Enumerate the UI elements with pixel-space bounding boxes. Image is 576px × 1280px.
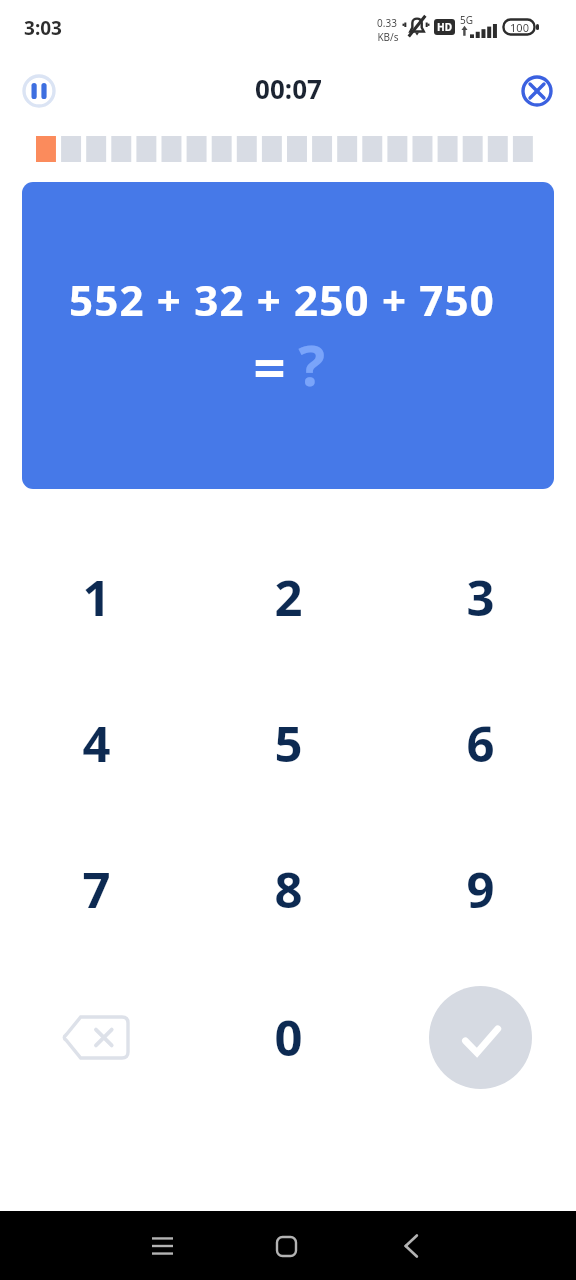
staticText: 2 <box>274 564 303 631</box>
staticText: 9 <box>466 856 495 923</box>
staticText: 100 <box>510 20 529 35</box>
button[interactable]: 3 <box>384 524 576 670</box>
button[interactable]: 1 <box>0 524 192 670</box>
button[interactable]: 0 <box>192 964 384 1110</box>
button[interactable]: 8 <box>192 816 384 962</box>
staticText: HD <box>437 20 452 34</box>
staticText: 00:07 <box>255 71 322 106</box>
button[interactable]: Recents <box>138 1222 186 1270</box>
button[interactable]: 9 <box>384 816 576 962</box>
staticText: 8 <box>274 856 303 923</box>
staticText: 6 <box>466 710 495 777</box>
button[interactable]: 5 <box>192 670 384 816</box>
staticText: 3 <box>466 564 495 631</box>
staticText: KB/s <box>377 30 399 44</box>
button[interactable]: Close <box>515 69 559 113</box>
staticText: 1 <box>82 564 111 631</box>
staticText: 0.33 <box>377 16 397 30</box>
staticText: 5G <box>460 13 473 27</box>
button[interactable]: 2 <box>192 524 384 670</box>
button[interactable]: 4 <box>0 670 192 816</box>
button[interactable]: Submit answer <box>429 986 532 1089</box>
staticText: 0 <box>274 1004 303 1071</box>
button[interactable]: Backspace <box>0 964 192 1110</box>
staticText: 7 <box>82 856 111 923</box>
staticText: 552 + 32 + 250 + 750 <box>69 271 495 328</box>
staticText: 4 <box>82 710 111 777</box>
staticText: ? <box>298 326 325 402</box>
button[interactable]: 7 <box>0 816 192 962</box>
button[interactable]: Pause <box>17 69 61 113</box>
button[interactable]: Back <box>387 1222 435 1270</box>
staticText: 5 <box>274 710 303 777</box>
button[interactable]: Home <box>262 1222 310 1270</box>
staticText: 3:03 <box>24 15 62 41</box>
button[interactable]: 6 <box>384 670 576 816</box>
staticText: = <box>253 328 286 404</box>
